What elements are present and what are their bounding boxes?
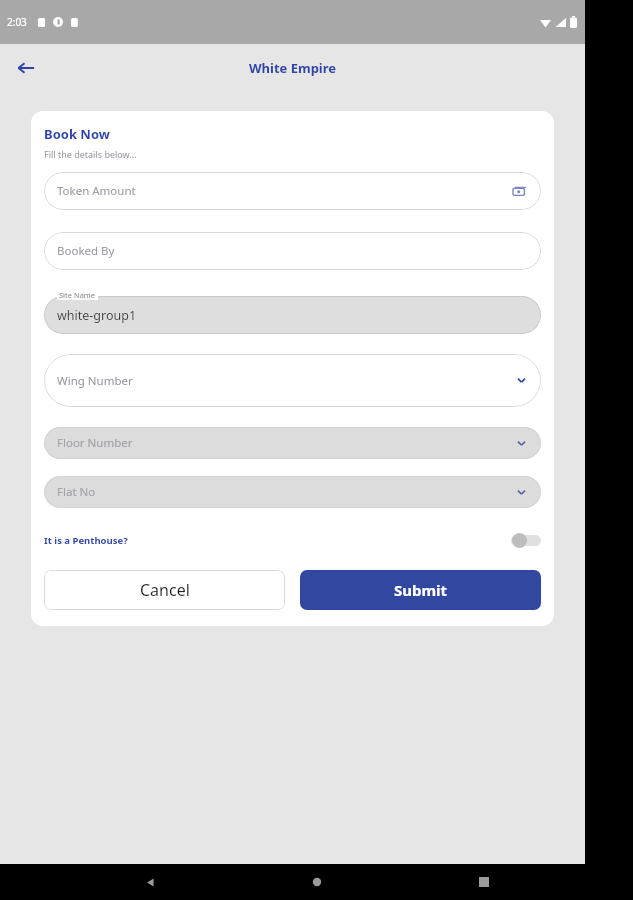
button[interactable]: Booked By — [44, 232, 541, 270]
staticText: white-group1 — [57, 307, 137, 324]
staticText: Submit — [394, 580, 448, 600]
button[interactable]: Flat No — [44, 476, 541, 508]
staticText: Token Amount — [57, 183, 136, 199]
button[interactable]: Submit — [300, 570, 541, 610]
staticText: 2:03 — [7, 15, 27, 29]
button[interactable]: Token amount — [510, 182, 528, 200]
staticText: Site Name — [59, 290, 96, 300]
staticText: Fill the details below... — [44, 148, 137, 160]
button[interactable]: Token Amount — [44, 172, 541, 210]
button[interactable]: Wing Number — [44, 354, 541, 407]
button[interactable]: Cancel — [44, 570, 285, 610]
staticText: Cancel — [140, 579, 190, 601]
button[interactable]: Back — [132, 864, 168, 900]
button[interactable]: white-group1 — [44, 296, 541, 334]
button[interactable]: Floor Number — [44, 427, 541, 459]
staticText: Booked By — [57, 243, 115, 259]
staticText: Book Now — [44, 125, 110, 143]
staticText: Wing Number — [57, 373, 133, 389]
staticText: White Empire — [249, 59, 337, 77]
staticText: It is a Penthouse? — [44, 534, 128, 547]
button[interactable]: Penthouse toggle — [511, 531, 541, 549]
button[interactable]: Home — [299, 864, 335, 900]
staticText: Floor Number — [57, 435, 133, 451]
button[interactable]: Recent apps — [466, 864, 502, 900]
staticText: Flat No — [57, 484, 96, 500]
button[interactable]: Back — [8, 50, 44, 86]
